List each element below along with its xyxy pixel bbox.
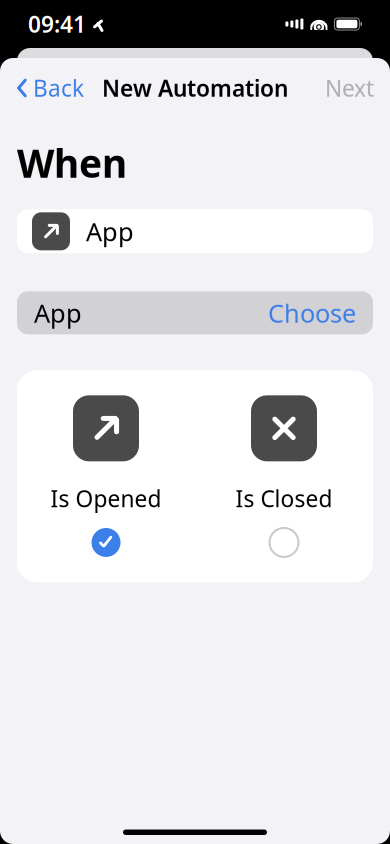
staticText: App — [86, 214, 134, 248]
button[interactable]: Choose — [268, 296, 356, 330]
staticText: Is Closed — [235, 483, 332, 513]
staticText: 09:41 — [28, 9, 86, 39]
button[interactable]: Is Closed — [195, 395, 373, 557]
button[interactable]: Is Opened — [17, 395, 195, 557]
button[interactable]: Back — [8, 65, 92, 111]
staticText: Choose — [268, 296, 356, 330]
button[interactable]: App — [17, 209, 373, 253]
staticText: Back — [33, 73, 84, 103]
staticText: New Automation — [102, 73, 288, 103]
staticText: Next — [325, 73, 374, 103]
button[interactable]: Next — [317, 65, 382, 111]
staticText: App — [34, 296, 82, 330]
staticText: When — [17, 137, 127, 188]
staticText: Is Opened — [50, 483, 161, 513]
